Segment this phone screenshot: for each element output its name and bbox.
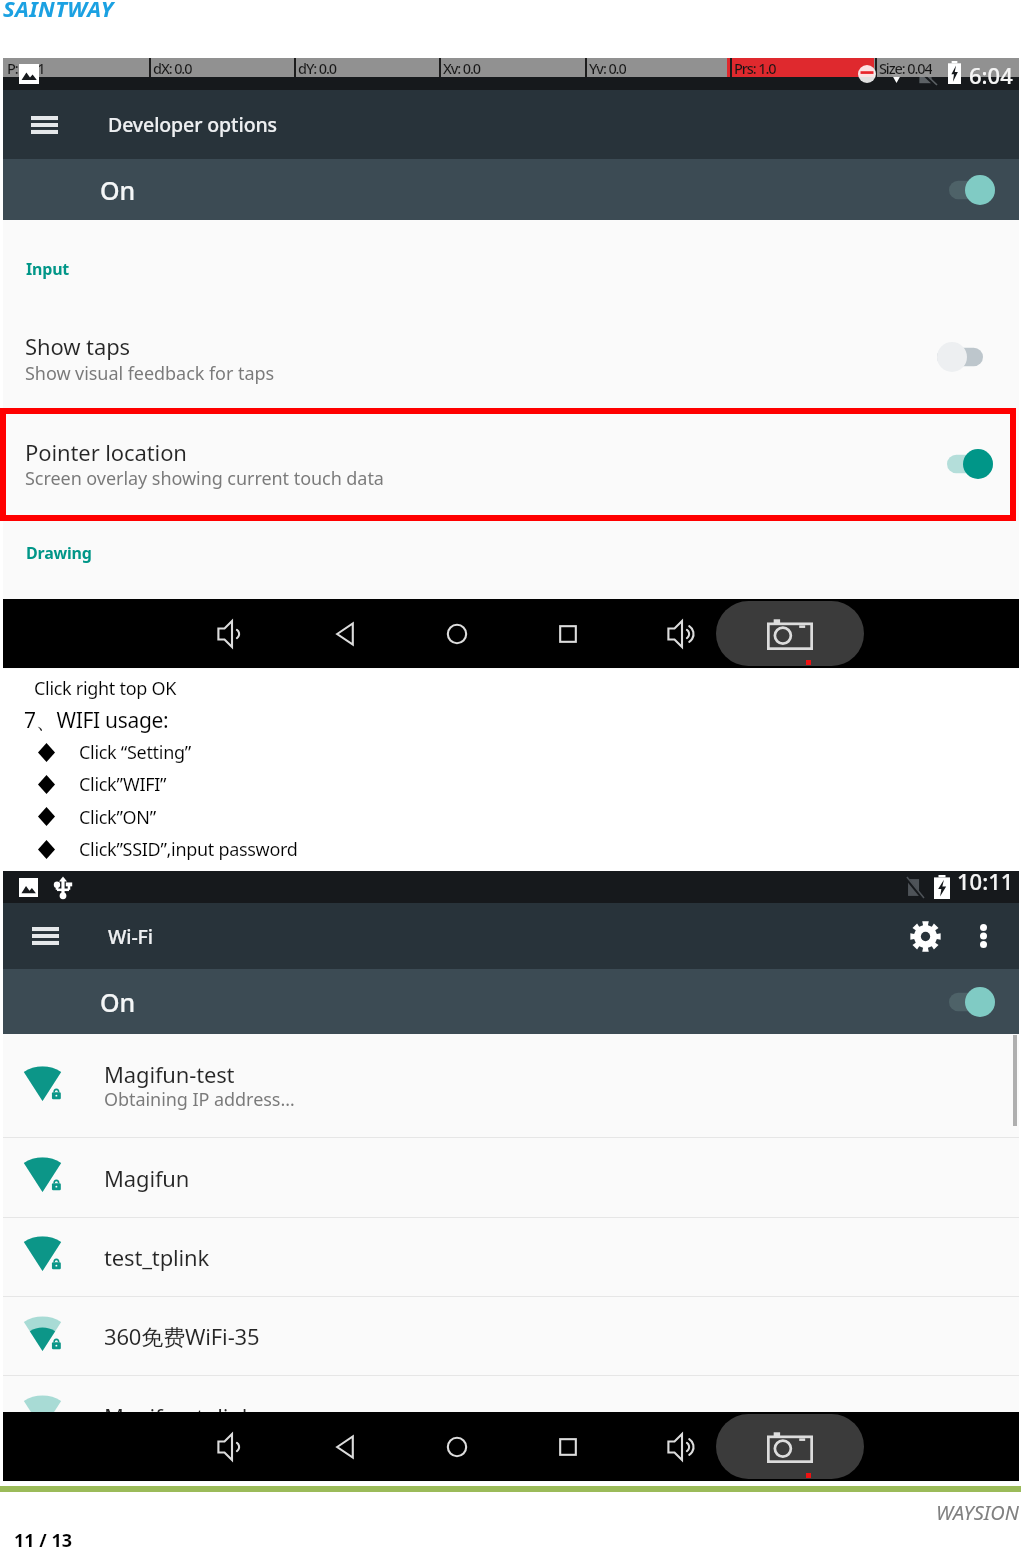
staticText: Magifun-tplink [104,1401,254,1431]
button[interactable]: Screenshot [716,1414,864,1479]
button[interactable]: Home [434,611,480,657]
button[interactable]: 360免费WiFi-35 [3,1297,1019,1376]
button[interactable]: Recents [545,1424,591,1470]
button[interactable] [947,449,993,479]
button[interactable]: Magifun-tplink [3,1376,1019,1455]
button[interactable]: Navigation drawer [21,102,67,148]
staticText: Click”SSID”,input password [79,837,298,862]
button[interactable]: test_tplink [3,1218,1019,1295]
staticText: Magifun-test [104,1059,235,1089]
staticText: Size: 0.04 [879,58,932,77]
button[interactable] [949,987,995,1017]
button[interactable]: Back [323,611,369,657]
staticText: dX: 0.0 [153,58,192,77]
staticText: Yv: 0.0 [589,58,626,77]
button[interactable]: Home [434,1424,480,1470]
button[interactable] [937,342,983,372]
staticText: On [100,985,136,1019]
button[interactable]: Volume up [659,1424,705,1470]
staticText: P: 0 / 1 [7,58,45,77]
staticText: Developer options [108,111,277,138]
staticText: Obtaining IP address… [104,1087,295,1112]
staticText: Show visual feedback for taps [25,361,275,386]
staticText: WAYSION [936,1499,1019,1526]
button[interactable] [949,175,995,205]
staticText: SAINTWAY [3,0,114,23]
button[interactable]: Volume down [209,1424,255,1470]
button[interactable]: Settings [900,911,950,961]
staticText: Xv: 0.0 [443,58,481,77]
staticText: On [100,173,136,207]
staticText: Input [26,258,70,280]
button[interactable]: On [3,159,1019,220]
button[interactable]: Navigation drawer [3,90,1019,159]
staticText: dY: 0.0 [298,58,337,77]
staticText: Click right top OK [34,676,176,701]
button[interactable]: Recents [545,611,591,657]
button[interactable]: Volume up [659,611,705,657]
staticText: Click “Setting” [79,740,191,765]
staticText: Show taps [25,331,131,361]
staticText: Click”ON” [79,805,156,830]
button[interactable]: Back [323,1424,369,1470]
staticText: 6:04 [969,60,1013,90]
staticText: Prs: 1.0 [734,58,776,77]
button[interactable]: Navigation drawer [22,913,68,959]
staticText: Wi-Fi [108,923,153,950]
staticText: Screen overlay showing current touch dat… [25,466,384,491]
button[interactable]: On [3,969,1019,1034]
button[interactable]: More options [961,914,1005,958]
staticText: 360免费WiFi-35 [104,1321,260,1351]
button[interactable]: Magifun-test [3,1034,1019,1137]
staticText: Drawing [26,542,92,564]
button[interactable]: Screenshot [716,601,864,666]
staticText: 10:11 [957,866,1014,896]
staticText: Pointer location [25,437,187,467]
button[interactable]: Pointer location [3,413,1019,523]
button[interactable]: Volume down [209,611,255,657]
staticText: Magifun [104,1163,190,1193]
staticText: test_tplink [104,1242,210,1272]
button[interactable]: Show taps [3,308,1019,408]
staticText: Click”WIFI” [79,772,167,797]
staticText: 11 / 13 [14,1528,73,1551]
staticText: 7、WIFI usage: [24,706,169,735]
button[interactable]: Magifun [3,1138,1019,1218]
